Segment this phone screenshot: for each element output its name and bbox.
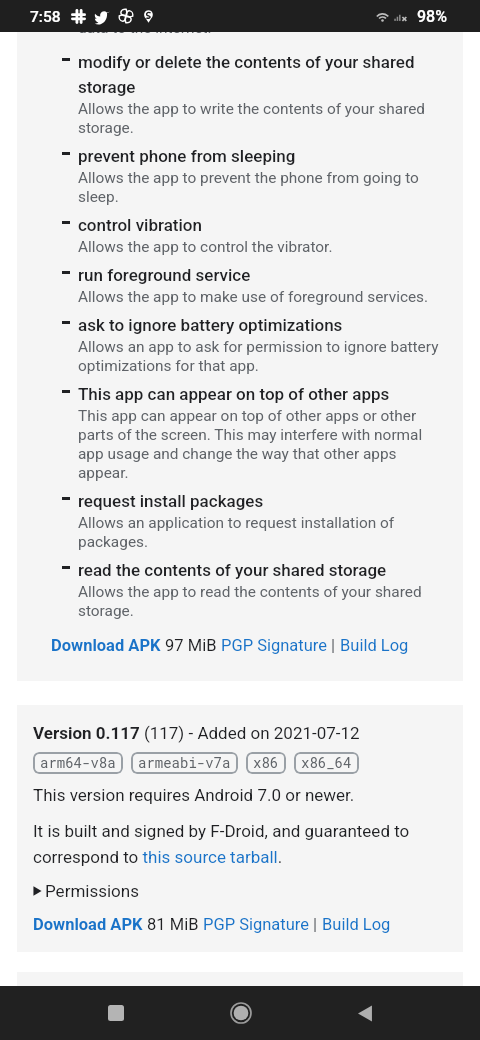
staticText: Allows the app to write the contents of … <box>78 99 443 137</box>
staticText: It is built and signed by F-Droid, and g… <box>33 816 447 868</box>
staticText: Build Log <box>340 634 409 655</box>
staticText: This app can appear on top of other apps <box>78 380 390 405</box>
staticText: Allows an app to ask for permission to i… <box>78 337 443 375</box>
staticText: armeabi-v7a <box>138 754 231 772</box>
button[interactable]: Home <box>178 986 303 1040</box>
staticText: x86 <box>253 754 279 772</box>
staticText: This version requires Android 7.0 or new… <box>33 784 355 806</box>
staticText: control vibration <box>78 211 202 236</box>
staticText: modify or delete the contents of your sh… <box>78 48 443 98</box>
staticText: Download APK <box>51 634 161 655</box>
staticText: This app can appear on top of other apps… <box>78 406 443 482</box>
staticText: data to the internet. <box>78 32 212 35</box>
staticText: run foreground service <box>78 261 251 286</box>
button[interactable]: Download APK <box>33 913 143 934</box>
staticText: prevent phone from sleeping <box>78 142 296 167</box>
button[interactable]: Permissions <box>33 880 139 902</box>
staticText: Build Log <box>322 913 391 934</box>
staticText: PGP Signature <box>203 913 309 934</box>
staticText: 98% <box>417 6 447 27</box>
staticText: | <box>309 913 322 934</box>
staticText: Allows the app to make use of foreground… <box>78 287 429 306</box>
staticText: request install packages <box>78 487 264 512</box>
staticText: read the contents of your shared storage <box>78 556 387 581</box>
button[interactable]: PGP Signature <box>203 913 309 934</box>
staticText: Version 0.117 (117) - Added on 2021-07-1… <box>33 723 360 743</box>
staticText: 7:58 <box>30 6 61 26</box>
staticText: Allows an application to request install… <box>78 513 443 551</box>
button[interactable]: Download APK <box>51 634 161 655</box>
staticText: PGP Signature <box>221 634 327 655</box>
staticText: Allows the app to prevent the phone from… <box>78 168 443 206</box>
staticText: arm64-v8a <box>40 754 116 772</box>
staticText: 81 MiB <box>143 913 203 934</box>
button[interactable]: Build Log <box>340 634 409 655</box>
button[interactable]: Recent apps <box>53 986 178 1040</box>
button[interactable]: Back <box>303 986 428 1040</box>
staticText: x86_64 <box>301 754 352 772</box>
button[interactable]: PGP Signature <box>221 634 327 655</box>
staticText: Permissions <box>45 880 139 902</box>
staticText: Allows the app to control the vibrator. <box>78 237 333 256</box>
staticText: Download APK <box>33 913 143 934</box>
staticText: 97 MiB <box>161 634 221 655</box>
button[interactable]: Build Log <box>322 913 391 934</box>
staticText: ask to ignore battery optimizations <box>78 311 343 336</box>
staticText: | <box>327 634 340 655</box>
staticText: Allows the app to read the contents of y… <box>78 582 443 620</box>
